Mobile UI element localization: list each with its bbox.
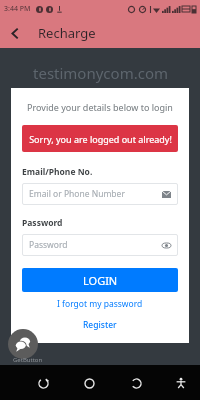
button[interactable]: Home [76, 370, 102, 396]
staticText: Password [22, 217, 63, 229]
button[interactable]: Password [29, 234, 171, 256]
staticText: Sorry, you are logged out already! [29, 133, 172, 145]
staticText: Register [83, 319, 117, 331]
button[interactable]: Recent apps [30, 370, 56, 396]
staticText: Email or Phone Number [29, 188, 125, 200]
staticText: 3:44 PM [4, 4, 31, 14]
staticText: Recharge [38, 24, 96, 42]
button[interactable]: Email or Phone Number [29, 183, 171, 205]
other: Show password [162, 241, 171, 250]
staticText: testimonycom.com [33, 63, 168, 83]
button[interactable]: LOGIN [22, 268, 178, 292]
staticText: LOGIN [83, 273, 118, 288]
staticText: GetButton [13, 356, 43, 364]
staticText: Email/Phone No. [22, 166, 93, 178]
staticText: Password [29, 239, 68, 251]
button[interactable]: Sorry, you are logged out already! [22, 125, 178, 152]
staticText: Provide your details below to login [22, 101, 178, 113]
button[interactable]: I forgot my password [22, 298, 178, 310]
button[interactable]: Accessibility [170, 372, 192, 394]
other: Email [162, 191, 171, 198]
button[interactable]: Back [123, 370, 149, 396]
button[interactable]: Back [0, 18, 30, 48]
staticText: I forgot my password [57, 298, 143, 310]
button[interactable]: Chat [8, 329, 38, 359]
button[interactable]: Register [22, 319, 178, 331]
